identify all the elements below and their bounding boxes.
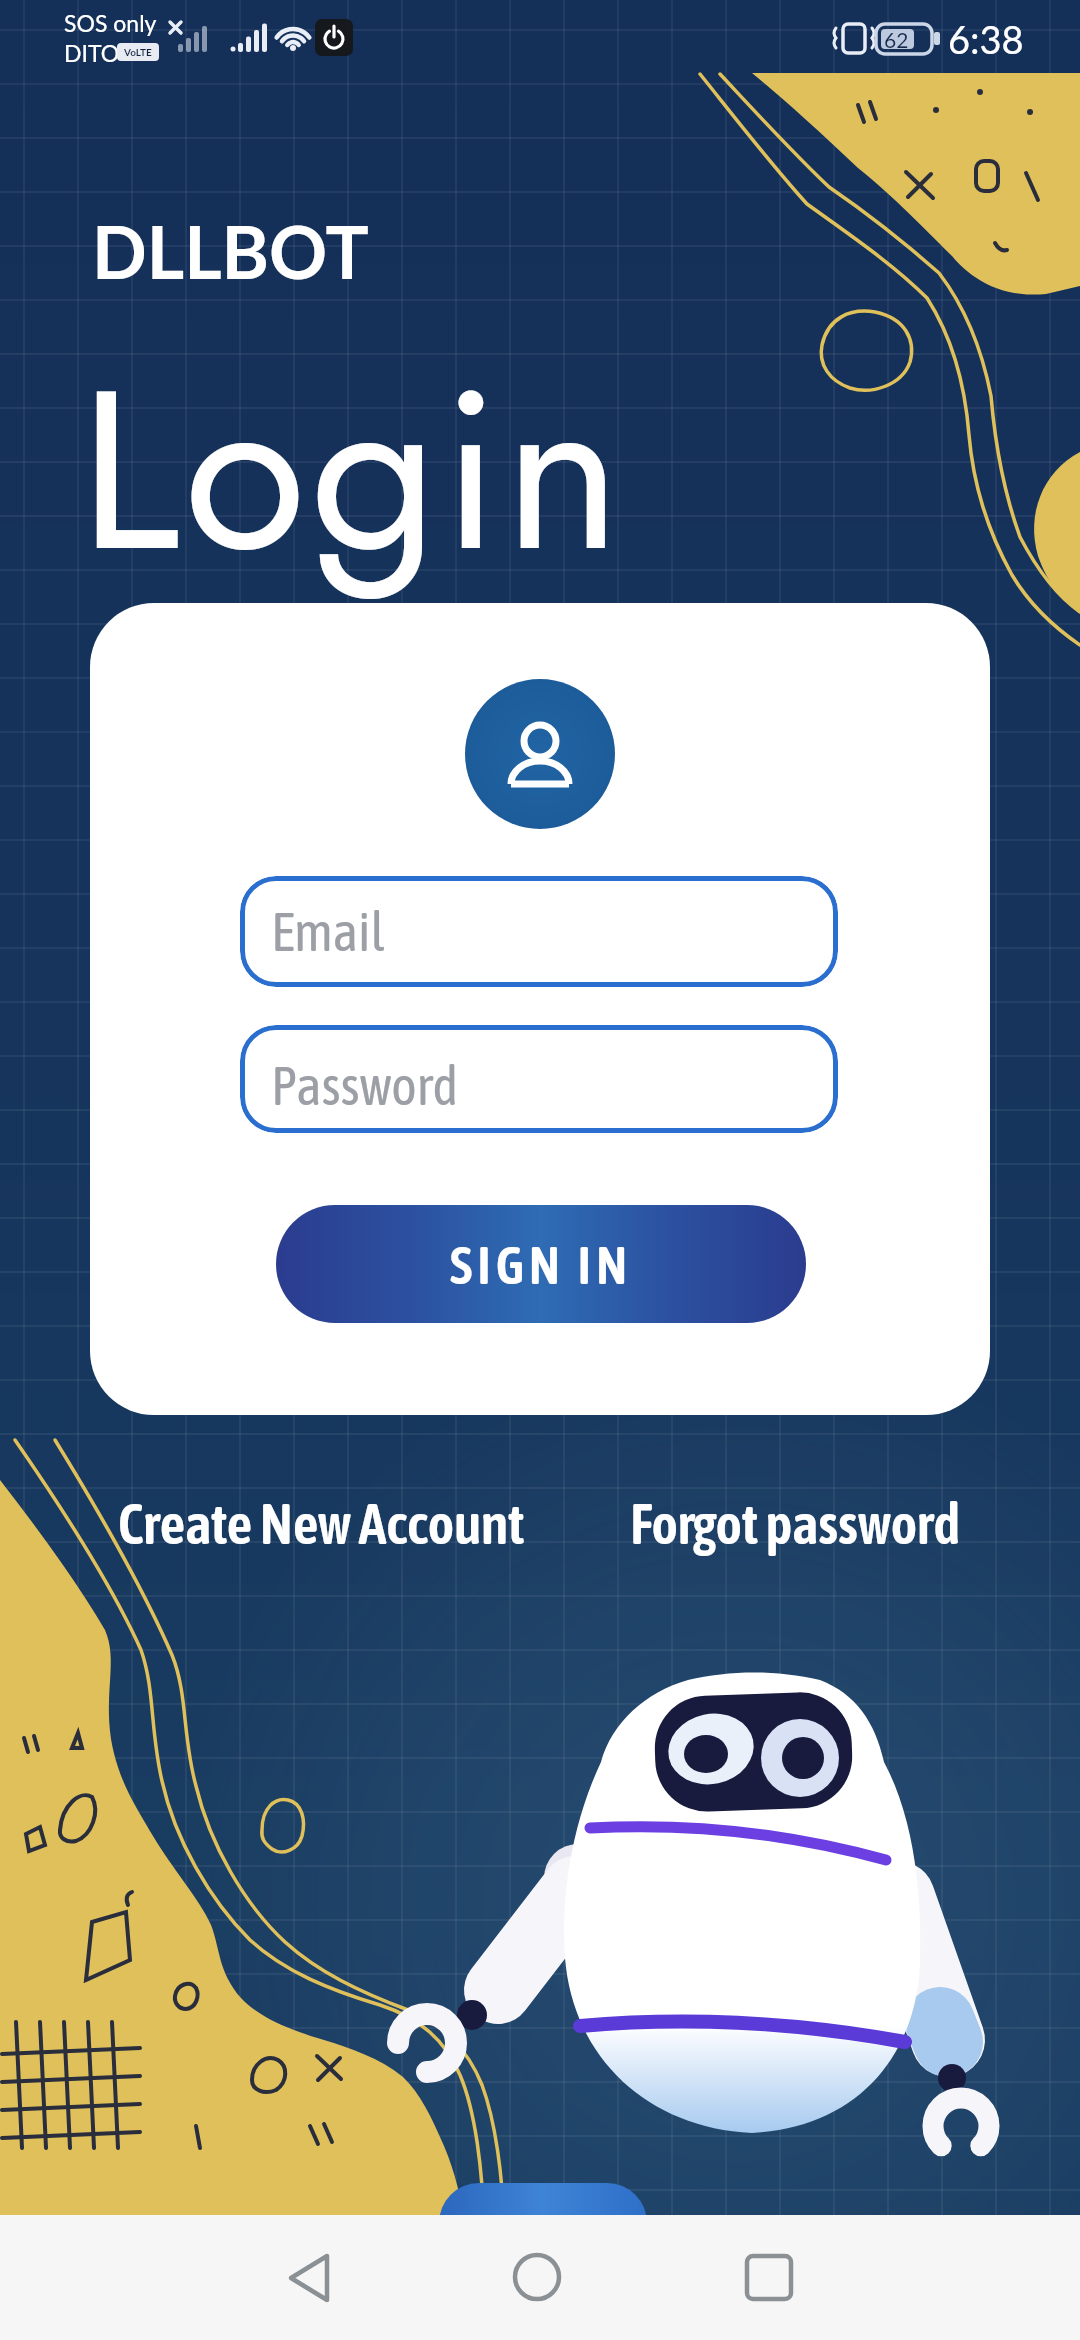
button[interactable] [270, 2235, 360, 2325]
staticText: Login [79, 308, 626, 632]
button[interactable]: Forgot password [630, 1492, 961, 1556]
staticText: Email [271, 901, 385, 963]
staticText: SIGN IN [450, 1234, 633, 1295]
button[interactable]: SIGN IN [276, 1205, 806, 1323]
button[interactable] [495, 2235, 585, 2325]
staticText: DITO [64, 39, 120, 67]
staticText: 62 [884, 27, 909, 52]
staticText: Create New Account [118, 1492, 525, 1556]
staticText: DLLBOT [92, 208, 369, 294]
button[interactable]: Password [240, 1025, 838, 1133]
staticText: 6:38 [948, 16, 1024, 62]
button[interactable] [725, 2235, 815, 2325]
staticText: SOS only [64, 9, 157, 37]
staticText: VoLTE [124, 46, 152, 58]
button[interactable]: Email [240, 876, 838, 987]
button[interactable]: Create New Account [118, 1492, 525, 1556]
staticText: Forgot password [630, 1492, 961, 1556]
staticText: Password [271, 1055, 459, 1117]
